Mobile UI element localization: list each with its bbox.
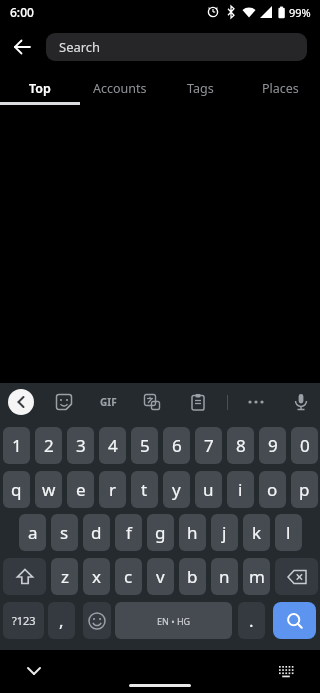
staticText: t bbox=[141, 478, 148, 501]
button[interactable] bbox=[245, 391, 267, 413]
button[interactable]: EN • HG bbox=[115, 602, 232, 639]
staticText: , bbox=[59, 609, 64, 632]
button[interactable] bbox=[8, 389, 34, 415]
button[interactable]: l bbox=[275, 514, 302, 551]
button[interactable]: Tags bbox=[160, 70, 240, 106]
button[interactable]: Accounts bbox=[80, 70, 160, 106]
staticText: Tags bbox=[187, 80, 214, 97]
button[interactable] bbox=[18, 655, 50, 687]
button[interactable] bbox=[187, 391, 209, 413]
staticText: g bbox=[155, 521, 166, 544]
button[interactable] bbox=[275, 558, 318, 595]
button[interactable] bbox=[83, 602, 111, 639]
button[interactable]: GIF bbox=[95, 391, 121, 413]
staticText: k bbox=[252, 521, 262, 544]
button[interactable]: e bbox=[67, 471, 94, 508]
button[interactable] bbox=[273, 602, 316, 639]
staticText: y bbox=[172, 478, 181, 501]
button[interactable]: i bbox=[227, 471, 254, 508]
staticText: . bbox=[249, 609, 254, 632]
button[interactable]: b bbox=[179, 558, 206, 595]
staticText: 9 bbox=[268, 434, 278, 457]
button[interactable]: f bbox=[115, 514, 142, 551]
button[interactable]: j bbox=[211, 514, 238, 551]
button[interactable]: w bbox=[35, 471, 62, 508]
button[interactable] bbox=[290, 391, 312, 413]
staticText: ?123 bbox=[12, 613, 36, 628]
button[interactable]: x bbox=[83, 558, 110, 595]
button[interactable]: Places bbox=[240, 70, 320, 106]
button[interactable]: t bbox=[131, 471, 158, 508]
staticText: EN • HG bbox=[157, 615, 191, 627]
staticText: o bbox=[267, 478, 278, 501]
button[interactable]: 7 bbox=[195, 427, 222, 464]
button[interactable] bbox=[141, 391, 163, 413]
staticText: j bbox=[222, 521, 227, 544]
staticText: d bbox=[91, 521, 102, 544]
staticText: 0 bbox=[300, 434, 310, 457]
button[interactable]: a bbox=[19, 514, 46, 551]
button[interactable]: r bbox=[99, 471, 126, 508]
staticText: n bbox=[219, 565, 230, 588]
button[interactable]: 2 bbox=[35, 427, 62, 464]
button[interactable]: , bbox=[48, 602, 75, 639]
button[interactable]: Search bbox=[46, 33, 307, 61]
button[interactable]: s bbox=[51, 514, 78, 551]
button[interactable]: 5 bbox=[131, 427, 158, 464]
staticText: Accounts bbox=[93, 80, 147, 97]
button[interactable]: 8 bbox=[227, 427, 254, 464]
button[interactable]: q bbox=[3, 471, 30, 508]
button[interactable]: ?123 bbox=[3, 602, 44, 639]
staticText: w bbox=[42, 478, 56, 501]
button[interactable]: c bbox=[115, 558, 142, 595]
staticText: Search bbox=[59, 38, 101, 56]
staticText: 2 bbox=[44, 434, 54, 457]
staticText: b bbox=[187, 565, 198, 588]
button[interactable]: y bbox=[163, 471, 190, 508]
button[interactable]: Top bbox=[0, 70, 80, 106]
button[interactable]: m bbox=[243, 558, 270, 595]
button[interactable]: k bbox=[243, 514, 270, 551]
button[interactable]: v bbox=[147, 558, 174, 595]
button[interactable] bbox=[3, 558, 46, 595]
button[interactable] bbox=[270, 655, 302, 687]
staticText: l bbox=[286, 521, 291, 544]
button[interactable]: 3 bbox=[67, 427, 94, 464]
staticText: 8 bbox=[236, 434, 246, 457]
staticText: e bbox=[76, 478, 86, 501]
staticText: a bbox=[28, 521, 38, 544]
button[interactable]: 4 bbox=[99, 427, 126, 464]
button[interactable]: u bbox=[195, 471, 222, 508]
button[interactable]: 1 bbox=[3, 427, 30, 464]
staticText: p bbox=[299, 478, 310, 501]
staticText: x bbox=[92, 565, 101, 588]
staticText: r bbox=[109, 478, 117, 501]
button[interactable] bbox=[53, 391, 75, 413]
button[interactable]: 0 bbox=[291, 427, 318, 464]
button[interactable]: 6 bbox=[163, 427, 190, 464]
button[interactable] bbox=[6, 31, 38, 63]
button[interactable]: h bbox=[179, 514, 206, 551]
staticText: 99% bbox=[289, 5, 311, 20]
staticText: 5 bbox=[140, 434, 150, 457]
button[interactable]: 9 bbox=[259, 427, 286, 464]
staticText: q bbox=[11, 478, 22, 501]
staticText: 4 bbox=[108, 434, 118, 457]
button[interactable]: g bbox=[147, 514, 174, 551]
staticText: 6 bbox=[172, 434, 182, 457]
staticText: v bbox=[156, 565, 165, 588]
staticText: i bbox=[238, 478, 243, 501]
button[interactable]: o bbox=[259, 471, 286, 508]
button[interactable]: d bbox=[83, 514, 110, 551]
button[interactable]: z bbox=[51, 558, 78, 595]
staticText: GIF bbox=[100, 395, 117, 409]
staticText: u bbox=[203, 478, 214, 501]
button[interactable]: . bbox=[238, 602, 265, 639]
button[interactable]: p bbox=[291, 471, 318, 508]
button[interactable]: n bbox=[211, 558, 238, 595]
staticText: z bbox=[61, 565, 69, 588]
staticText: m bbox=[249, 565, 265, 588]
staticText: h bbox=[187, 521, 198, 544]
staticText: Top bbox=[29, 80, 51, 97]
staticText: c bbox=[124, 565, 133, 588]
